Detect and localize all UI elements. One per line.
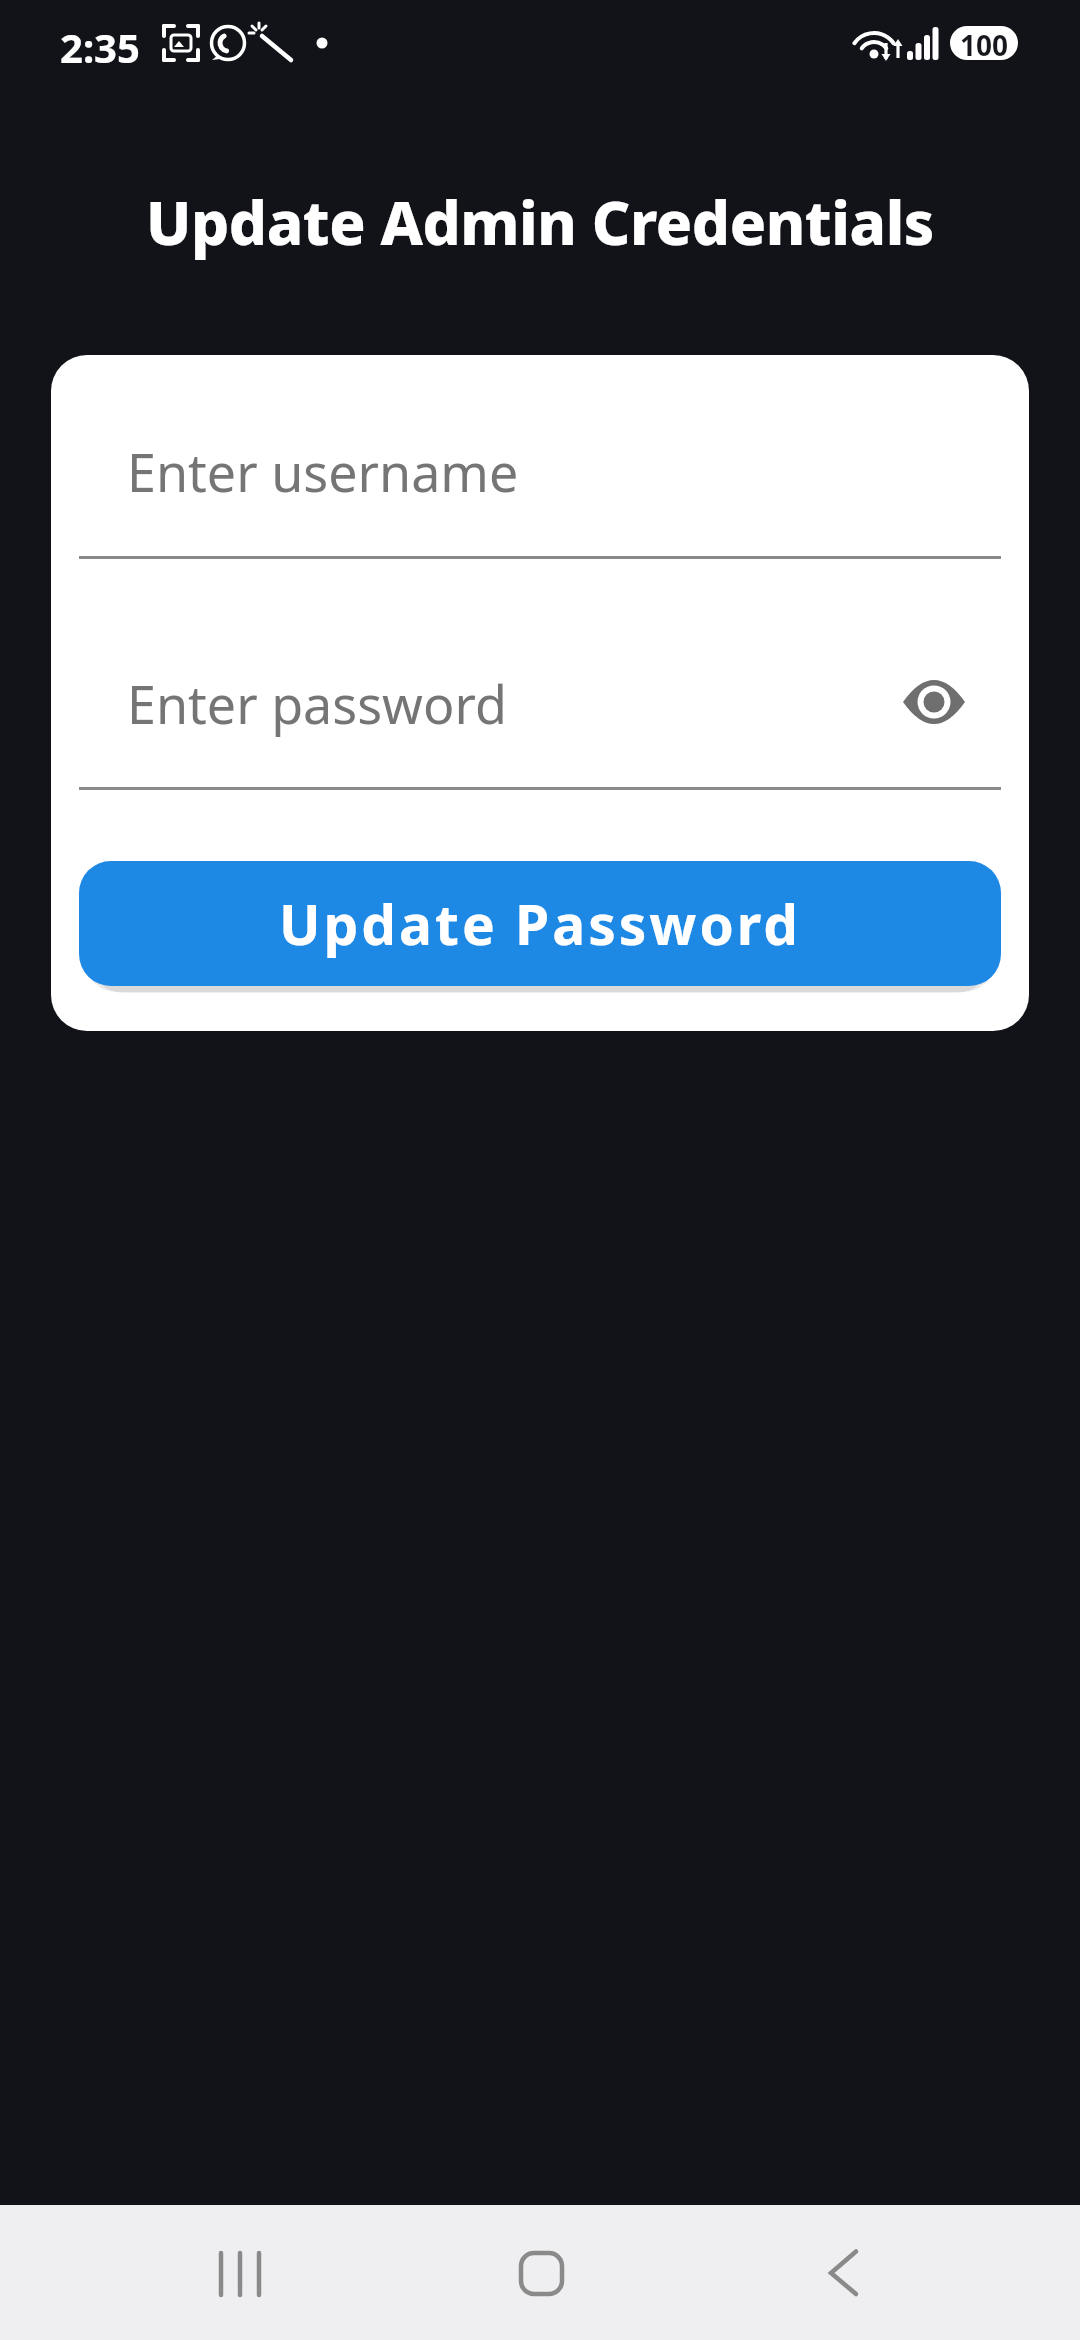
button[interactable]	[190, 2225, 290, 2320]
button[interactable]: Enter password	[79, 647, 1001, 792]
staticText: 2:35	[60, 20, 140, 74]
button[interactable]	[790, 2225, 890, 2320]
button[interactable]	[902, 679, 966, 725]
button[interactable]: Update Password	[79, 861, 1001, 986]
staticText: Update Password	[279, 886, 802, 961]
button[interactable]: Enter username	[79, 415, 1001, 560]
staticText: Enter password	[127, 668, 507, 739]
staticText: Update Admin Credentials	[146, 181, 934, 263]
button[interactable]	[490, 2225, 590, 2320]
staticText: 100	[960, 26, 1009, 60]
staticText: Enter username	[127, 436, 519, 507]
